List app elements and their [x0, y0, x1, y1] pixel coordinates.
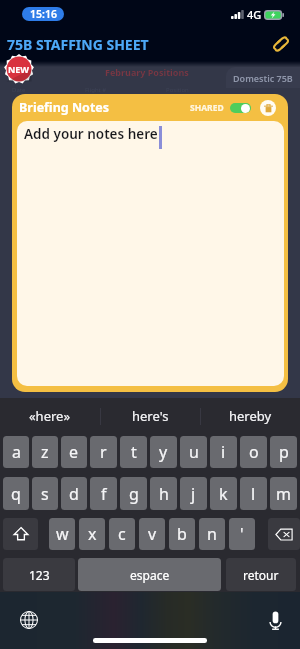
button[interactable]: Shared toggle	[230, 103, 251, 113]
button[interactable]: a	[3, 436, 29, 468]
staticText: v	[148, 523, 157, 545]
staticText: retour	[243, 567, 279, 583]
button[interactable]: hereby	[201, 398, 300, 434]
button[interactable]: «here»	[0, 398, 100, 434]
staticText: '	[240, 523, 244, 545]
button[interactable]: retour	[226, 558, 296, 591]
staticText: h	[159, 483, 169, 505]
button[interactable]: e	[61, 436, 87, 468]
staticText: s	[41, 483, 49, 505]
button[interactable]: g	[120, 477, 147, 510]
button[interactable]: b	[169, 518, 195, 550]
staticText: w	[56, 523, 69, 545]
button[interactable]: Attach link	[268, 31, 294, 57]
staticText: t	[131, 441, 137, 463]
button[interactable]: t	[120, 436, 147, 468]
button[interactable]: y	[150, 436, 177, 468]
button[interactable]: n	[199, 518, 225, 550]
button[interactable]: v	[139, 518, 165, 550]
staticText: c	[118, 523, 126, 545]
staticText: o	[249, 441, 259, 463]
button[interactable]: f	[90, 477, 117, 510]
button[interactable]: Backspace	[268, 518, 300, 550]
staticText: a	[12, 441, 21, 463]
staticText: «here»	[29, 407, 71, 425]
staticText: 15:16	[30, 7, 57, 21]
button[interactable]: x	[79, 518, 105, 550]
button[interactable]: c	[109, 518, 135, 550]
button[interactable]: d	[61, 477, 87, 510]
staticText: x	[88, 523, 97, 545]
staticText: m	[276, 483, 291, 505]
staticText: Add your notes here	[24, 125, 158, 143]
staticText: e	[69, 441, 79, 463]
staticText: j	[191, 483, 196, 505]
button[interactable]: o	[240, 436, 267, 468]
button[interactable]: Change keyboard language	[16, 607, 42, 633]
button[interactable]: z	[32, 436, 58, 468]
button[interactable]: u	[180, 436, 207, 468]
button[interactable]: Voice input	[262, 607, 288, 633]
button[interactable]: 123	[3, 558, 75, 591]
button[interactable]: h	[150, 477, 177, 510]
button[interactable]: Delete note	[260, 100, 276, 116]
staticText: NEW	[8, 63, 30, 75]
button[interactable]: p	[270, 436, 297, 468]
staticText: k	[219, 483, 228, 505]
button[interactable]: w	[49, 518, 75, 550]
button[interactable]: '	[229, 518, 255, 550]
staticText: 4G	[247, 7, 262, 21]
button[interactable]: k	[210, 477, 237, 510]
staticText: r	[100, 441, 107, 463]
button[interactable]: i	[210, 436, 237, 468]
staticText: 123	[29, 567, 50, 583]
staticText: Domestic 75B	[233, 72, 293, 84]
staticText: q	[11, 483, 21, 505]
staticText: n	[207, 523, 217, 545]
staticText: February Positions	[105, 66, 189, 78]
staticText: u	[189, 441, 199, 463]
staticText: l	[251, 483, 256, 505]
staticText: espace	[130, 567, 170, 583]
staticText: hereby	[229, 407, 272, 425]
button[interactable]: Shift	[3, 518, 38, 550]
button[interactable]: q	[3, 477, 29, 510]
button[interactable]: r	[90, 436, 117, 468]
staticText: f	[101, 483, 107, 505]
staticText: Briefing Notes	[19, 99, 110, 116]
staticText: i	[221, 441, 226, 463]
button[interactable]: s	[32, 477, 58, 510]
staticText: p	[279, 441, 289, 463]
staticText: z	[41, 441, 49, 463]
button[interactable]: l	[240, 477, 267, 510]
staticText: g	[129, 483, 139, 505]
staticText: d	[69, 483, 79, 505]
button[interactable]: here's	[101, 398, 200, 434]
staticText: y	[159, 441, 168, 463]
button[interactable]: m	[270, 477, 297, 510]
staticText: 75B STAFFING SHEET	[7, 35, 149, 54]
button[interactable]: espace	[78, 558, 221, 591]
button[interactable]: j	[180, 477, 207, 510]
staticText: SHARED	[190, 102, 224, 114]
staticText: here's	[132, 407, 169, 425]
staticText: b	[177, 523, 187, 545]
